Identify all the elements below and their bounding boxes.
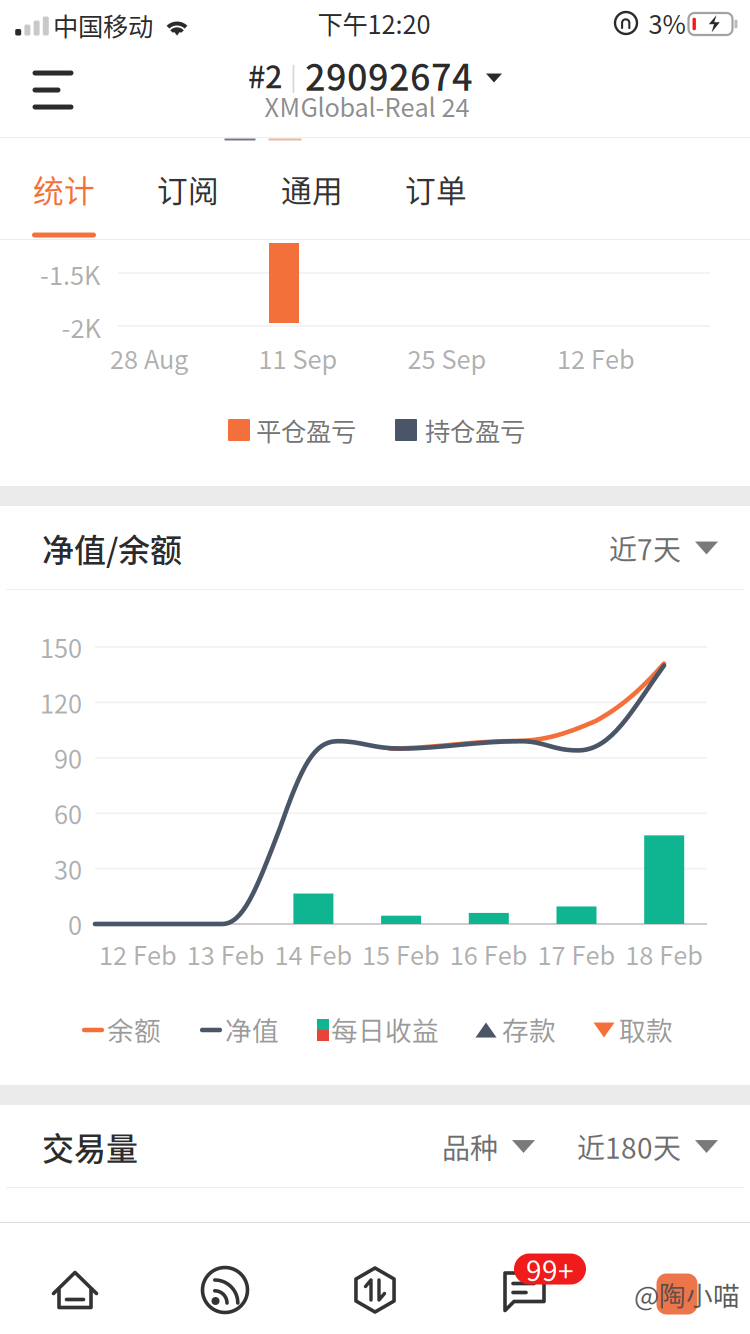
staticText: 取款	[619, 1010, 673, 1048]
staticText: 中国移动	[53, 7, 153, 43]
staticText: 14 Feb	[274, 936, 352, 972]
staticText: XMGlobal-Real 24	[264, 88, 469, 124]
button[interactable]: 近7天	[601, 518, 726, 578]
staticText: -1.5K	[40, 256, 100, 292]
button[interactable]: 近180天	[569, 1116, 726, 1176]
staticText: 存款	[502, 1010, 556, 1048]
button[interactable]: 订单	[373, 137, 499, 240]
staticText: 150	[40, 629, 82, 665]
staticText: 18 Feb	[625, 936, 703, 972]
staticText: 120	[40, 684, 82, 721]
staticText: 统计	[33, 167, 95, 211]
staticText: 订阅	[157, 167, 219, 211]
staticText: 30	[54, 850, 82, 887]
button[interactable]: Menu	[3, 43, 103, 136]
button[interactable]: Home	[0, 1234, 150, 1334]
staticText: -2K	[61, 309, 100, 345]
staticText: 12 Feb	[557, 340, 635, 376]
staticText: 99+	[526, 1249, 574, 1289]
staticText: 29092674	[305, 49, 473, 101]
staticText: 17 Feb	[537, 936, 615, 972]
button[interactable]: Trade	[300, 1234, 450, 1334]
staticText: |	[290, 57, 297, 93]
staticText: @陶小喵	[634, 1275, 740, 1313]
staticText: 持仓盈亏	[425, 412, 525, 448]
staticText: 净值	[225, 1010, 279, 1048]
staticText: 交易量	[42, 1123, 138, 1170]
staticText: 净值/余额	[42, 525, 182, 571]
button[interactable]: Messages	[475, 1222, 625, 1334]
staticText: 90	[54, 739, 82, 776]
staticText: 3%	[648, 5, 685, 41]
staticText: 15 Feb	[362, 936, 440, 972]
staticText: 平仓盈亏	[256, 412, 356, 448]
button[interactable]: 通用	[249, 137, 375, 240]
staticText: 品种	[442, 1126, 498, 1167]
staticText: 60	[54, 795, 82, 832]
staticText: 25 Sep	[407, 340, 486, 376]
staticText: 11 Sep	[258, 340, 337, 376]
staticText: 余额	[107, 1010, 161, 1048]
staticText: 通用	[281, 167, 343, 211]
staticText: 订单	[405, 167, 467, 211]
staticText: 13 Feb	[187, 936, 265, 972]
staticText: 近180天	[577, 1126, 681, 1167]
staticText: 每日收益	[331, 1010, 439, 1048]
button[interactable]: 统计	[1, 137, 127, 240]
staticText: #2	[248, 53, 282, 97]
button[interactable]: Feed	[150, 1234, 300, 1334]
staticText: 12 Feb	[99, 936, 177, 972]
button[interactable]: 品种	[434, 1116, 543, 1176]
staticText: 28 Aug	[110, 340, 188, 376]
staticText: 下午12:20	[317, 5, 430, 41]
button[interactable]: 订阅	[125, 137, 251, 240]
staticText: 0	[68, 906, 82, 942]
staticText: 16 Feb	[450, 936, 528, 972]
staticText: 近7天	[609, 528, 681, 568]
